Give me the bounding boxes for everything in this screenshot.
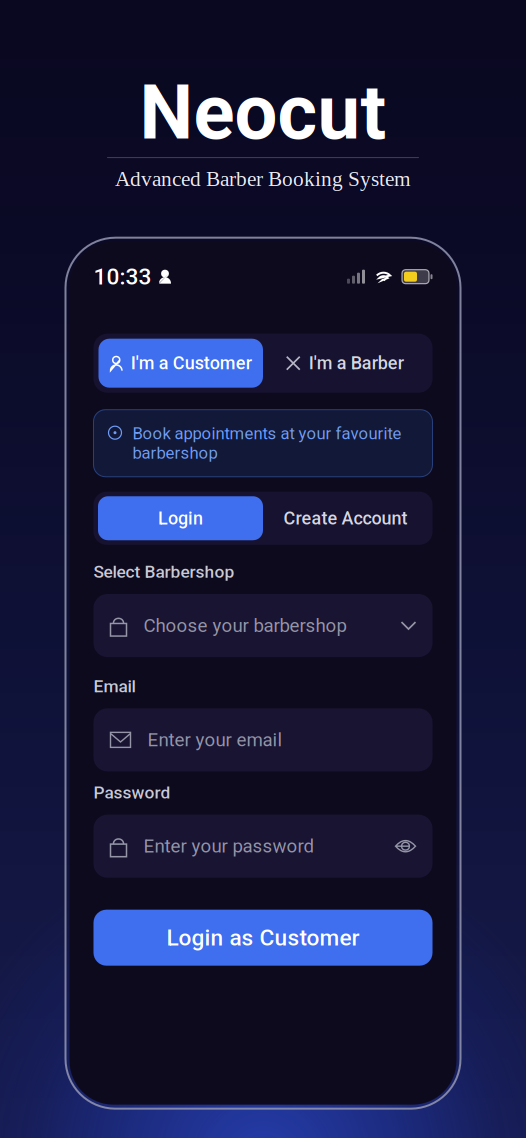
button[interactable]: Enter your password (93, 815, 432, 878)
button[interactable]: Choose your barbershop (93, 594, 432, 657)
staticText: Book appointments at your favourite barb… (132, 424, 401, 463)
staticText: Email (93, 676, 135, 696)
staticText: Create Account (283, 508, 407, 529)
staticText: Advanced Barber Booking System (115, 167, 411, 191)
button[interactable]: I'm a Barber (263, 339, 427, 388)
button[interactable]: Login (98, 496, 263, 540)
button[interactable]: Login as Customer (93, 910, 432, 966)
staticText: Login as Customer (166, 924, 359, 951)
button[interactable]: I'm a Customer (98, 339, 263, 388)
staticText: I'm a Customer (131, 353, 252, 374)
button[interactable]: Enter your email (93, 708, 432, 771)
staticText: Choose your barbershop (143, 615, 346, 636)
staticText: Select Barbershop (93, 562, 234, 582)
staticText: Password (93, 782, 170, 803)
staticText: I'm a Barber (309, 353, 404, 374)
staticText: Login (158, 508, 203, 529)
staticText: 10:33 (93, 263, 151, 290)
staticText: Neocut (139, 68, 386, 157)
staticText: Enter your password (143, 835, 314, 857)
button[interactable]: Create Account (263, 496, 428, 540)
staticText: Enter your email (147, 729, 282, 751)
